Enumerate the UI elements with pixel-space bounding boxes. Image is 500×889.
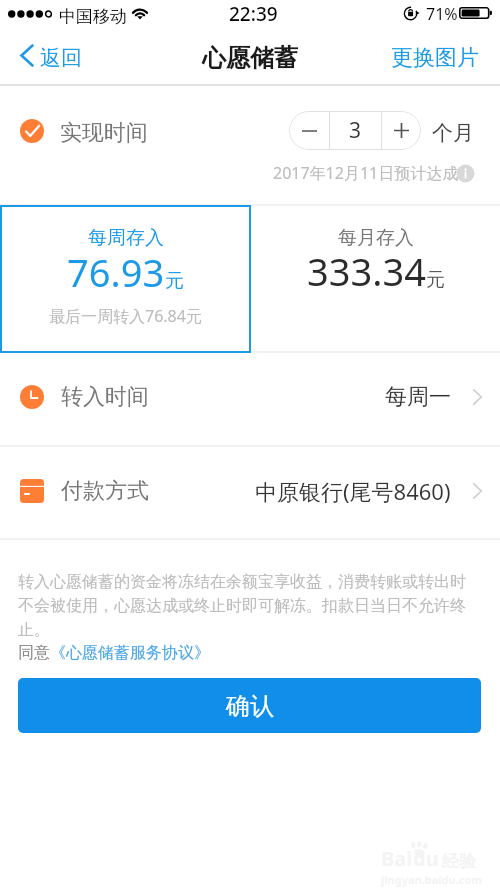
button[interactable]: Increase	[382, 111, 421, 150]
staticText: 转入心愿储蓄的资金将冻结在余额宝享收益，消费转账或转出时不会被使用，心愿达成或终…	[18, 572, 470, 640]
button[interactable]: 转入时间	[0, 351, 500, 443]
staticText: 确认	[226, 691, 274, 721]
button[interactable]: 每周存入	[0, 205, 251, 353]
staticText: 转入时间	[61, 383, 149, 411]
staticText: 每周一	[385, 383, 451, 411]
staticText: 元	[165, 269, 184, 293]
staticText: 同意	[18, 643, 50, 663]
staticText: 最后一周转入76.84元	[49, 305, 202, 327]
button[interactable]: 每月存入	[251, 206, 500, 351]
button[interactable]: 《心愿储蓄服务协议》	[50, 643, 210, 663]
other: Info	[456, 164, 475, 183]
button[interactable]: 返回	[14, 39, 88, 77]
button[interactable]: 更换图片	[377, 36, 500, 80]
staticText: 2017年12月11日预计达成	[273, 162, 459, 184]
staticText: 76.93	[67, 246, 165, 298]
staticText: 更换图片	[391, 44, 479, 72]
staticText: Bai	[381, 845, 413, 872]
button[interactable]: 确认	[18, 678, 481, 733]
staticText: 3	[349, 116, 362, 145]
staticText: 每周存入	[88, 226, 164, 250]
staticText: 22:39	[229, 1, 278, 27]
staticText: 个月	[432, 120, 474, 146]
staticText: 71%	[426, 3, 458, 25]
staticText: du	[413, 845, 439, 872]
staticText: 元	[426, 268, 445, 292]
staticText: 中原银行(尾号8460)	[255, 476, 451, 506]
staticText: jingyan.baidu.com	[381, 872, 483, 887]
staticText: 返回	[40, 45, 82, 71]
staticText: 经验	[442, 851, 476, 872]
staticText: 中国移动	[59, 6, 127, 27]
button[interactable]: Decrease	[289, 111, 329, 150]
staticText: 心愿储蓄	[202, 43, 298, 73]
staticText: 实现时间	[60, 119, 148, 147]
staticText: 每月存入	[338, 226, 414, 250]
staticText: 付款方式	[61, 477, 149, 505]
button[interactable]: 付款方式	[0, 445, 500, 537]
staticText: 333.34	[307, 245, 426, 297]
